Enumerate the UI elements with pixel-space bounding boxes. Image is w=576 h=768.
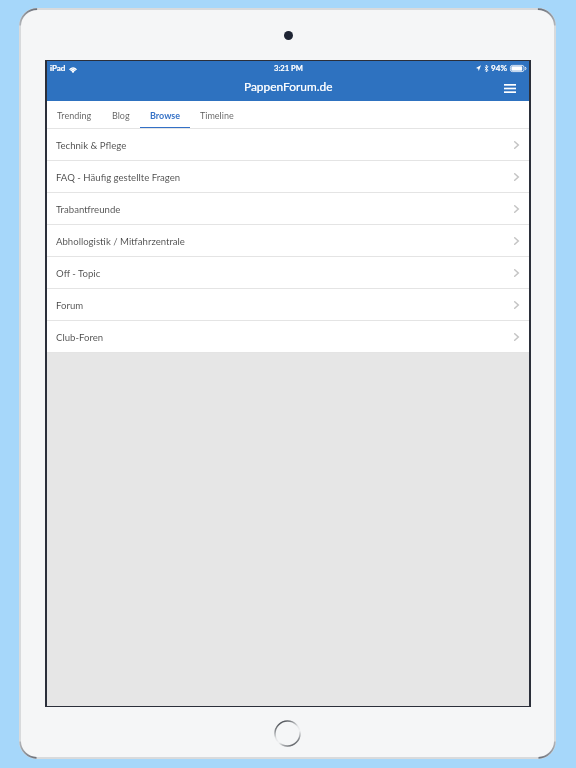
button[interactable]: Menu [494,78,526,98]
button[interactable]: Off - Topic [47,257,529,288]
button[interactable]: Trabantfreunde [47,193,529,224]
button[interactable]: Trending [57,101,92,129]
staticText: FAQ - Häufig gestellte Fragen [56,172,514,184]
button[interactable]: Club-Foren [47,321,529,352]
staticText: Technik & Pflege [56,140,514,152]
button[interactable]: Abhollogistik / Mitfahrzentrale [47,225,529,256]
staticText: Trabantfreunde [56,204,514,216]
button[interactable]: Timeline [200,101,234,129]
button[interactable]: FAQ - Häufig gestellte Fragen [47,161,529,192]
staticText: Browse [150,110,181,121]
staticText: Club-Foren [56,332,514,344]
button[interactable]: Browse [150,101,181,129]
button[interactable]: Forum [47,289,529,320]
staticText: Forum [56,300,514,312]
staticText: Abhollogistik / Mitfahrzentrale [56,236,514,248]
staticText: Blog [112,110,130,121]
staticText: Off - Topic [56,268,514,280]
staticText: Timeline [200,110,234,121]
staticText: iPad [50,63,66,73]
staticText: 3:21 PM [274,63,303,72]
staticText: Trending [57,110,92,121]
button[interactable]: Technik & Pflege [47,129,529,160]
button[interactable]: Blog [112,101,130,129]
staticText: PappenForum.de [244,79,333,93]
staticText: 94% [491,63,507,73]
